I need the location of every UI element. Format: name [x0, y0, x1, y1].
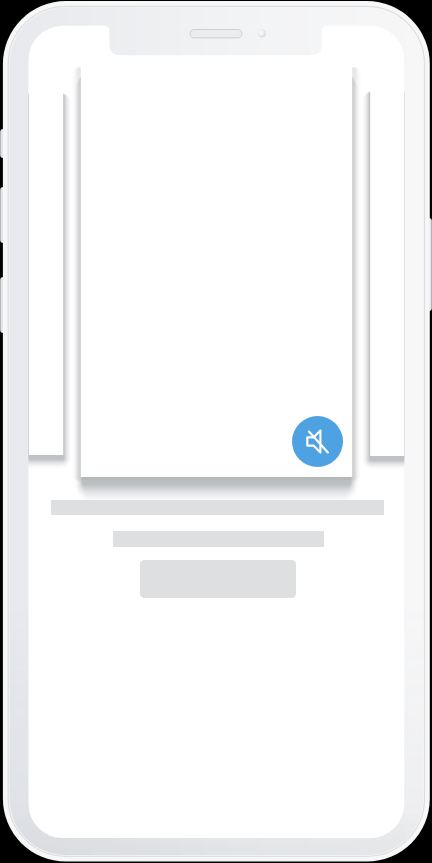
button[interactable]: Mute: [292, 416, 343, 467]
